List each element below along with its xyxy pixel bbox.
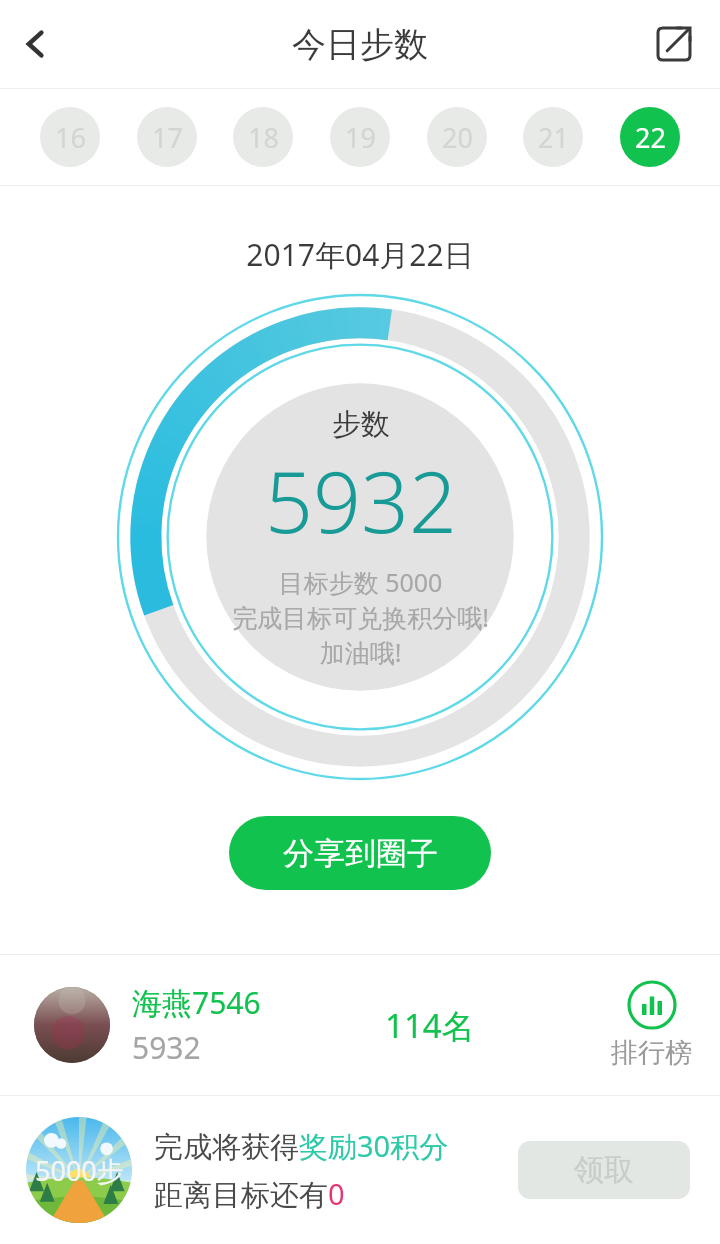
button[interactable]: 17	[137, 107, 197, 167]
staticText: 21	[538, 119, 569, 156]
button[interactable]: 领取	[518, 1141, 690, 1199]
staticText: 领取	[574, 1151, 634, 1189]
staticText: 今日步数	[292, 23, 428, 66]
staticText: 19	[345, 119, 376, 156]
staticText: 完成将获得奖励30积分	[154, 1126, 449, 1166]
staticText: 距离目标还有0	[154, 1174, 345, 1214]
staticText: 2017年04月22日	[0, 234, 720, 275]
staticText: 海燕7546	[132, 982, 261, 1023]
staticText: 5932	[265, 443, 457, 557]
button[interactable]: 排行榜	[611, 980, 692, 1070]
staticText: 5932	[132, 1027, 201, 1068]
button[interactable]: 海燕7546	[0, 955, 720, 1095]
button[interactable]: 18	[233, 107, 293, 167]
staticText: 5000步	[35, 1152, 124, 1189]
button[interactable]: Share	[646, 16, 702, 72]
button[interactable]: 19	[330, 107, 390, 167]
button[interactable]: 21	[523, 107, 583, 167]
staticText: 17	[152, 119, 183, 156]
staticText: 16	[55, 119, 86, 156]
button[interactable]: 20	[427, 107, 487, 167]
button[interactable]: 16	[40, 107, 100, 167]
button[interactable]: Back	[0, 8, 72, 80]
button[interactable]: 分享到圈子	[229, 816, 491, 890]
staticText: 步数	[332, 406, 390, 443]
staticText: 目标步数 5000 完成目标可兑换积分哦! 加油哦!	[232, 565, 489, 669]
staticText: 排行榜	[611, 1036, 692, 1070]
staticText: 18	[248, 119, 279, 156]
button[interactable]: 22	[620, 107, 680, 167]
staticText: 20	[442, 119, 473, 156]
staticText: 22	[635, 119, 666, 156]
staticText: 114名	[385, 1003, 475, 1048]
staticText: 分享到圈子	[283, 834, 438, 873]
